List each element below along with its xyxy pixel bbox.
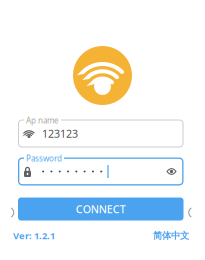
staticText: 简体中文: [153, 230, 189, 241]
staticText: Ver: 1.2.1: [13, 229, 55, 242]
staticText: 123123: [42, 126, 78, 141]
button[interactable]: 简体中文: [153, 230, 189, 241]
staticText: CONNECT: [76, 202, 126, 216]
button[interactable]: Ver: 1.2.1: [13, 229, 55, 242]
button[interactable]: Show password: [165, 165, 177, 177]
button[interactable]: CONNECT: [18, 197, 183, 220]
staticText: Password: [26, 153, 62, 164]
staticText: Ap name: [26, 115, 59, 126]
